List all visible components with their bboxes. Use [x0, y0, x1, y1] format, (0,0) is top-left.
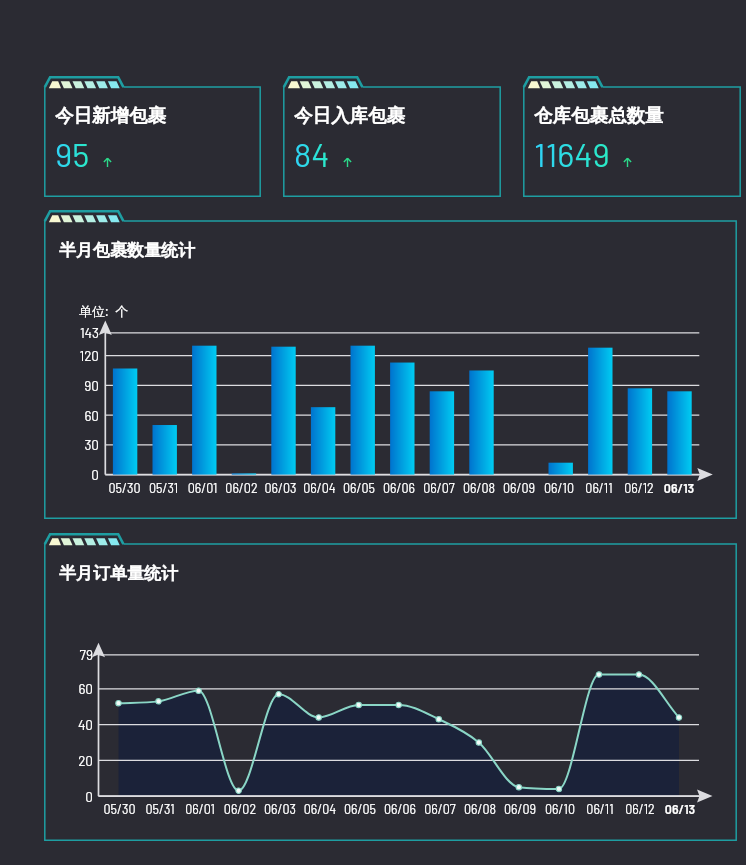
staticText: 143 — [51, 324, 99, 340]
staticText: 0 — [45, 788, 93, 804]
staticText: 120 — [51, 347, 99, 363]
staticText: 79 — [45, 646, 93, 662]
staticText: 仓库包裹总数量 — [534, 104, 664, 127]
staticText: 06/09 — [500, 801, 540, 816]
staticText: 半月包裹数量统计 — [59, 240, 195, 261]
staticText: 06/10 — [540, 801, 580, 816]
staticText: 06/13 — [659, 480, 699, 495]
staticText: 06/13 — [660, 801, 700, 816]
staticText: 05/31 — [144, 480, 183, 495]
button[interactable]: 今日入库包裹 — [283, 76, 501, 197]
staticText: 0 — [51, 466, 99, 482]
staticText: 06/04 — [300, 801, 340, 816]
staticText: 60 — [45, 680, 93, 696]
staticText: 06/06 — [380, 801, 420, 816]
button[interactable]: 今日新增包裹 — [44, 76, 261, 197]
staticText: 06/05 — [340, 801, 380, 816]
button[interactable]: 半月订单量统计 — [44, 533, 737, 841]
staticText: 06/10 — [539, 480, 579, 495]
staticText: 05/31 — [140, 801, 180, 816]
staticText: 半月订单量统计 — [59, 563, 178, 584]
staticText: 06/06 — [379, 480, 419, 495]
staticText: 30 — [51, 436, 99, 452]
staticText: 06/12 — [619, 480, 659, 495]
staticText: 06/03 — [261, 480, 300, 495]
staticText: 06/08 — [460, 801, 500, 816]
staticText: 06/08 — [459, 480, 499, 495]
staticText: 06/11 — [580, 801, 620, 816]
staticText: 90 — [51, 377, 99, 393]
staticText: 20 — [45, 752, 93, 768]
staticText: 40 — [45, 716, 93, 732]
staticText: 06/07 — [420, 801, 460, 816]
staticText: 06/05 — [339, 480, 379, 495]
staticText: 05/30 — [105, 480, 144, 495]
staticText: 06/02 — [220, 801, 260, 816]
staticText: 06/02 — [222, 480, 261, 495]
staticText: 06/01 — [183, 480, 222, 495]
staticText: 06/04 — [300, 480, 339, 495]
button[interactable]: 半月包裹数量统计 — [44, 210, 737, 519]
staticText: 06/01 — [180, 801, 220, 816]
button[interactable]: 仓库包裹总数量 — [523, 76, 741, 197]
staticText: 今日入库包裹 — [294, 104, 405, 127]
staticText: 60 — [51, 407, 99, 423]
staticText: 05/30 — [99, 801, 140, 816]
staticText: 06/11 — [579, 480, 619, 495]
staticText: 84 — [294, 134, 330, 174]
staticText: 06/12 — [620, 801, 660, 816]
staticText: 06/03 — [260, 801, 300, 816]
staticText: 今日新增包裹 — [55, 104, 166, 127]
staticText: 单位: 个 — [79, 302, 129, 320]
staticText: 95 — [55, 134, 90, 174]
staticText: 06/07 — [419, 480, 459, 495]
staticText: 11649 — [534, 134, 610, 174]
staticText: 06/09 — [499, 480, 539, 495]
